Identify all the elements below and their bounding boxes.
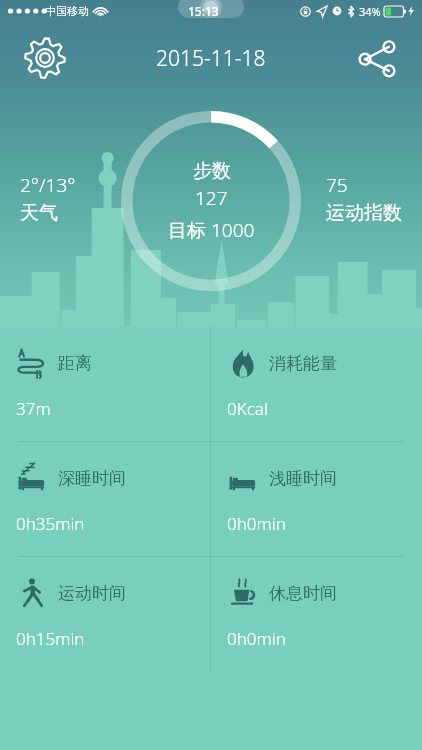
staticText: 天气 [20,201,58,225]
staticText: 运动时间 [58,583,126,604]
staticText: 步数 [193,159,231,183]
staticText: 休息时间 [269,583,337,604]
button[interactable]: Share [350,31,404,85]
button[interactable]: 浅睡时间 [211,442,422,556]
button[interactable]: 消耗能量 [211,327,422,441]
staticText: 深睡时间 [58,468,126,489]
staticText: 75 [326,172,348,198]
staticText: 消耗能量 [269,353,337,374]
button[interactable]: Settings [18,31,72,85]
staticText: 0h0min [227,512,286,535]
staticText: 2015-11-18 [156,44,266,73]
staticText: 0h0min [227,627,286,650]
staticText: 37m [16,397,51,420]
staticText: 0h15min [16,627,85,650]
button[interactable]: 运动时间 [0,557,211,671]
button[interactable]: 步数 [121,111,301,291]
staticText: 目标 1000 [168,217,255,243]
staticText: 中国移动 [45,4,89,18]
staticText: 0Kcal [227,397,268,420]
staticText: 浅睡时间 [269,468,337,489]
staticText: 2°/13° [20,172,76,198]
staticText: 34% [359,4,381,19]
button[interactable]: 休息时间 [211,557,422,671]
button[interactable]: 深睡时间 [0,442,211,556]
button[interactable]: 距离 [0,327,211,441]
staticText: 0h35min [16,512,85,535]
staticText: 距离 [58,353,92,374]
staticText: 运动指数 [326,201,402,225]
staticText: 15:13 [188,3,219,19]
staticText: 127 [195,185,228,211]
